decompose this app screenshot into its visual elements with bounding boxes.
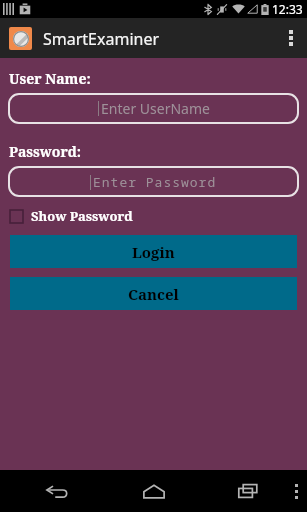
- button[interactable]: SmartExaminer app icon: [9, 27, 32, 50]
- button[interactable]: Back: [42, 476, 72, 506]
- button[interactable]: More options: [275, 18, 307, 58]
- button[interactable]: Menu: [285, 470, 307, 512]
- button[interactable]: Cancel: [10, 277, 297, 310]
- staticText: SmartExaminer: [43, 28, 160, 50]
- button[interactable]: Home: [138, 475, 170, 507]
- staticText: Enter UserName: [101, 99, 210, 118]
- staticText: Enter Password: [93, 173, 217, 191]
- button[interactable]: Login: [10, 235, 297, 268]
- staticText: 12:33: [272, 1, 303, 17]
- staticText: Password:: [9, 142, 82, 161]
- staticText: User Name:: [9, 69, 91, 88]
- button[interactable]: Show Password: [9, 207, 133, 225]
- staticText: Cancel: [128, 284, 179, 304]
- staticText: Login: [132, 242, 175, 262]
- button[interactable]: Recent apps: [233, 476, 263, 506]
- button[interactable]: Enter Password: [8, 166, 299, 197]
- button[interactable]: Enter UserName: [8, 93, 299, 124]
- staticText: Show Password: [31, 207, 133, 225]
